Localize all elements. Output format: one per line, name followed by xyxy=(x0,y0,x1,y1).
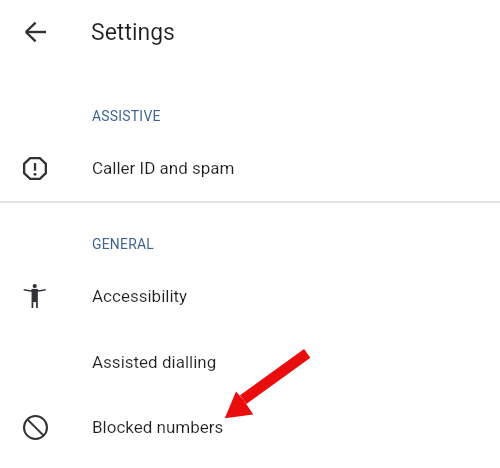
staticText: ASSISTIVE xyxy=(92,108,161,124)
button[interactable]: Accessibility xyxy=(0,272,500,320)
staticText: Accessibility xyxy=(92,286,188,306)
button[interactable]: Caller ID and spam xyxy=(0,144,500,192)
button[interactable]: Assisted dialling xyxy=(0,338,500,386)
staticText: Assisted dialling xyxy=(92,352,217,372)
staticText: GENERAL xyxy=(92,236,155,252)
button[interactable]: Navigate up xyxy=(11,8,59,56)
button[interactable]: Blocked numbers xyxy=(0,403,500,451)
staticText: Blocked numbers xyxy=(92,417,224,437)
staticText: Settings xyxy=(91,19,175,46)
staticText: Caller ID and spam xyxy=(92,158,235,178)
